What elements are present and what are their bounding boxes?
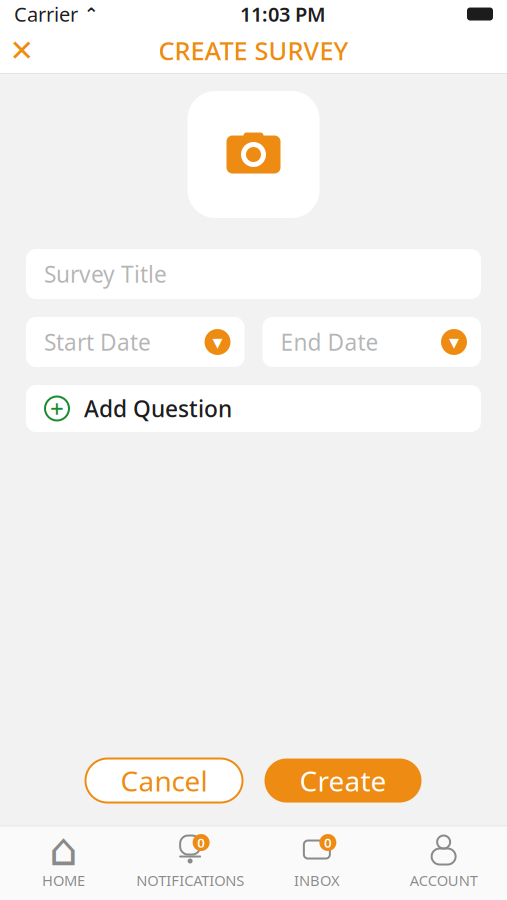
staticText: Create [299,762,386,799]
staticText: ⌃ [78,4,99,24]
button[interactable]: Close [0,28,44,72]
button[interactable]: End Date [262,317,481,367]
staticText: End Date [280,327,378,357]
button[interactable]: Survey Title [26,249,481,299]
staticText: CREATE SURVEY [158,34,348,67]
button[interactable]: ACCOUNT [380,826,507,900]
button[interactable]: 0 [253,826,380,900]
staticText: ▾ [212,331,222,353]
button[interactable]: Create [264,758,421,802]
button[interactable]: Choose date [202,327,232,357]
button[interactable]: + [26,385,481,432]
staticText: Add Question [84,393,232,423]
staticText: Survey Title [44,259,167,289]
staticText: HOME [42,870,85,890]
staticText: Cancel [120,762,207,799]
button[interactable]: Cancel [85,758,242,802]
button[interactable]: Start Date [26,317,244,367]
button[interactable]: Add photo [187,91,319,218]
button[interactable]: ⌂ [0,826,127,900]
staticText: ⌂ [49,824,78,875]
staticText: ✕ [9,34,34,67]
staticText: Carrier [14,1,78,27]
staticText: NOTIFICATIONS [136,870,244,890]
button[interactable]: 0 [127,826,254,900]
staticText: 0 [324,834,332,851]
staticText: + [50,393,64,424]
staticText: 0 [197,834,205,851]
staticText: Start Date [44,327,151,357]
staticText: 11:03 PM [240,1,326,27]
staticText: ▾ [449,331,459,353]
staticText: INBOX [294,870,340,890]
staticText: ACCOUNT [410,870,478,890]
button[interactable]: Choose date [439,327,469,357]
